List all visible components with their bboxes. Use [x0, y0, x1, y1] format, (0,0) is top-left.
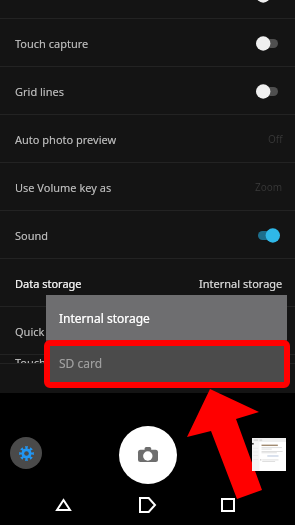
staticText: Zoom	[255, 180, 283, 194]
staticText: Grid lines	[15, 84, 64, 99]
staticText: Internal storage	[59, 310, 150, 326]
button[interactable]: Save location	[0, 0, 295, 19]
button[interactable]: Touch assist	[0, 355, 295, 364]
staticText: Auto photo preview	[15, 132, 117, 147]
button[interactable]: Quick launch	[0, 307, 295, 355]
button[interactable]: Home	[125, 483, 169, 525]
button[interactable]: Gallery	[252, 438, 286, 471]
button[interactable]: Grid lines	[0, 67, 295, 115]
staticText: Internal storage	[199, 276, 283, 291]
staticText: Off	[268, 132, 283, 146]
button[interactable]: Recents	[206, 483, 250, 525]
button[interactable]: Shutter	[119, 426, 177, 484]
button[interactable]: Data storage	[0, 259, 295, 307]
staticText: Quick launch	[15, 324, 82, 339]
staticText: Use Volume key as	[15, 180, 112, 195]
button[interactable]: Touch capture	[0, 19, 295, 67]
staticText: Sound	[15, 228, 49, 243]
staticText: Touch assist	[15, 355, 78, 364]
button[interactable]: Use Volume key as	[0, 163, 295, 211]
staticText: SD card	[59, 355, 103, 371]
button[interactable]: Auto photo preview	[0, 115, 295, 163]
button[interactable]: Back	[41, 483, 85, 525]
button[interactable]: Sound	[0, 211, 295, 259]
staticText: Data storage	[15, 276, 82, 291]
staticText: Touch capture	[15, 36, 89, 51]
button[interactable]: SD card	[46, 340, 287, 386]
button[interactable]: Internal storage	[46, 295, 287, 340]
button[interactable]: Settings	[10, 437, 42, 469]
